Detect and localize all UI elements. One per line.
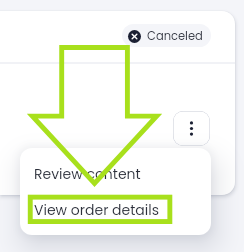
staticText: Review content bbox=[34, 164, 141, 184]
button[interactable]: More options bbox=[173, 111, 210, 146]
staticText: Canceled bbox=[147, 28, 203, 44]
button[interactable]: View order details bbox=[20, 192, 211, 228]
button[interactable]: Canceled bbox=[122, 24, 211, 47]
button[interactable]: Review content bbox=[20, 155, 211, 192]
staticText: View order details bbox=[34, 200, 159, 220]
